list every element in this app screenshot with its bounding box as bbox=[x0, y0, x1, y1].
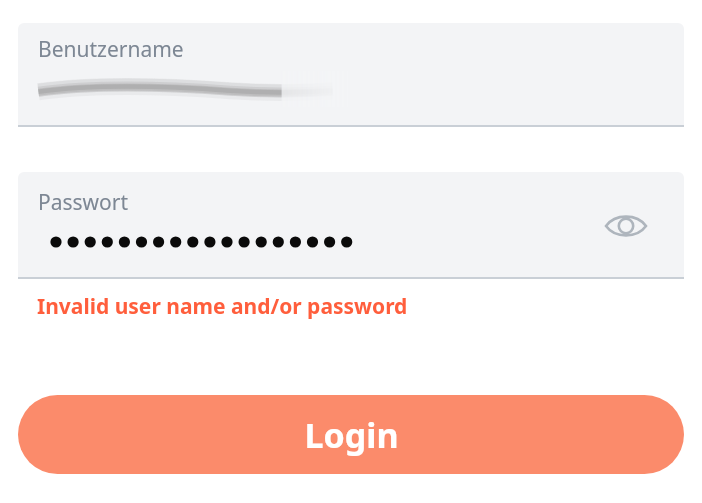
button[interactable]: Benutzername bbox=[18, 23, 684, 127]
staticText: Invalid user name and/or password bbox=[37, 292, 408, 321]
button[interactable]: Login bbox=[18, 395, 684, 474]
staticText: Passwort bbox=[38, 188, 129, 217]
button[interactable]: Show password bbox=[598, 198, 654, 254]
staticText: Login bbox=[304, 412, 399, 458]
button[interactable]: Passwort bbox=[18, 172, 684, 279]
staticText: Benutzername bbox=[38, 35, 184, 64]
